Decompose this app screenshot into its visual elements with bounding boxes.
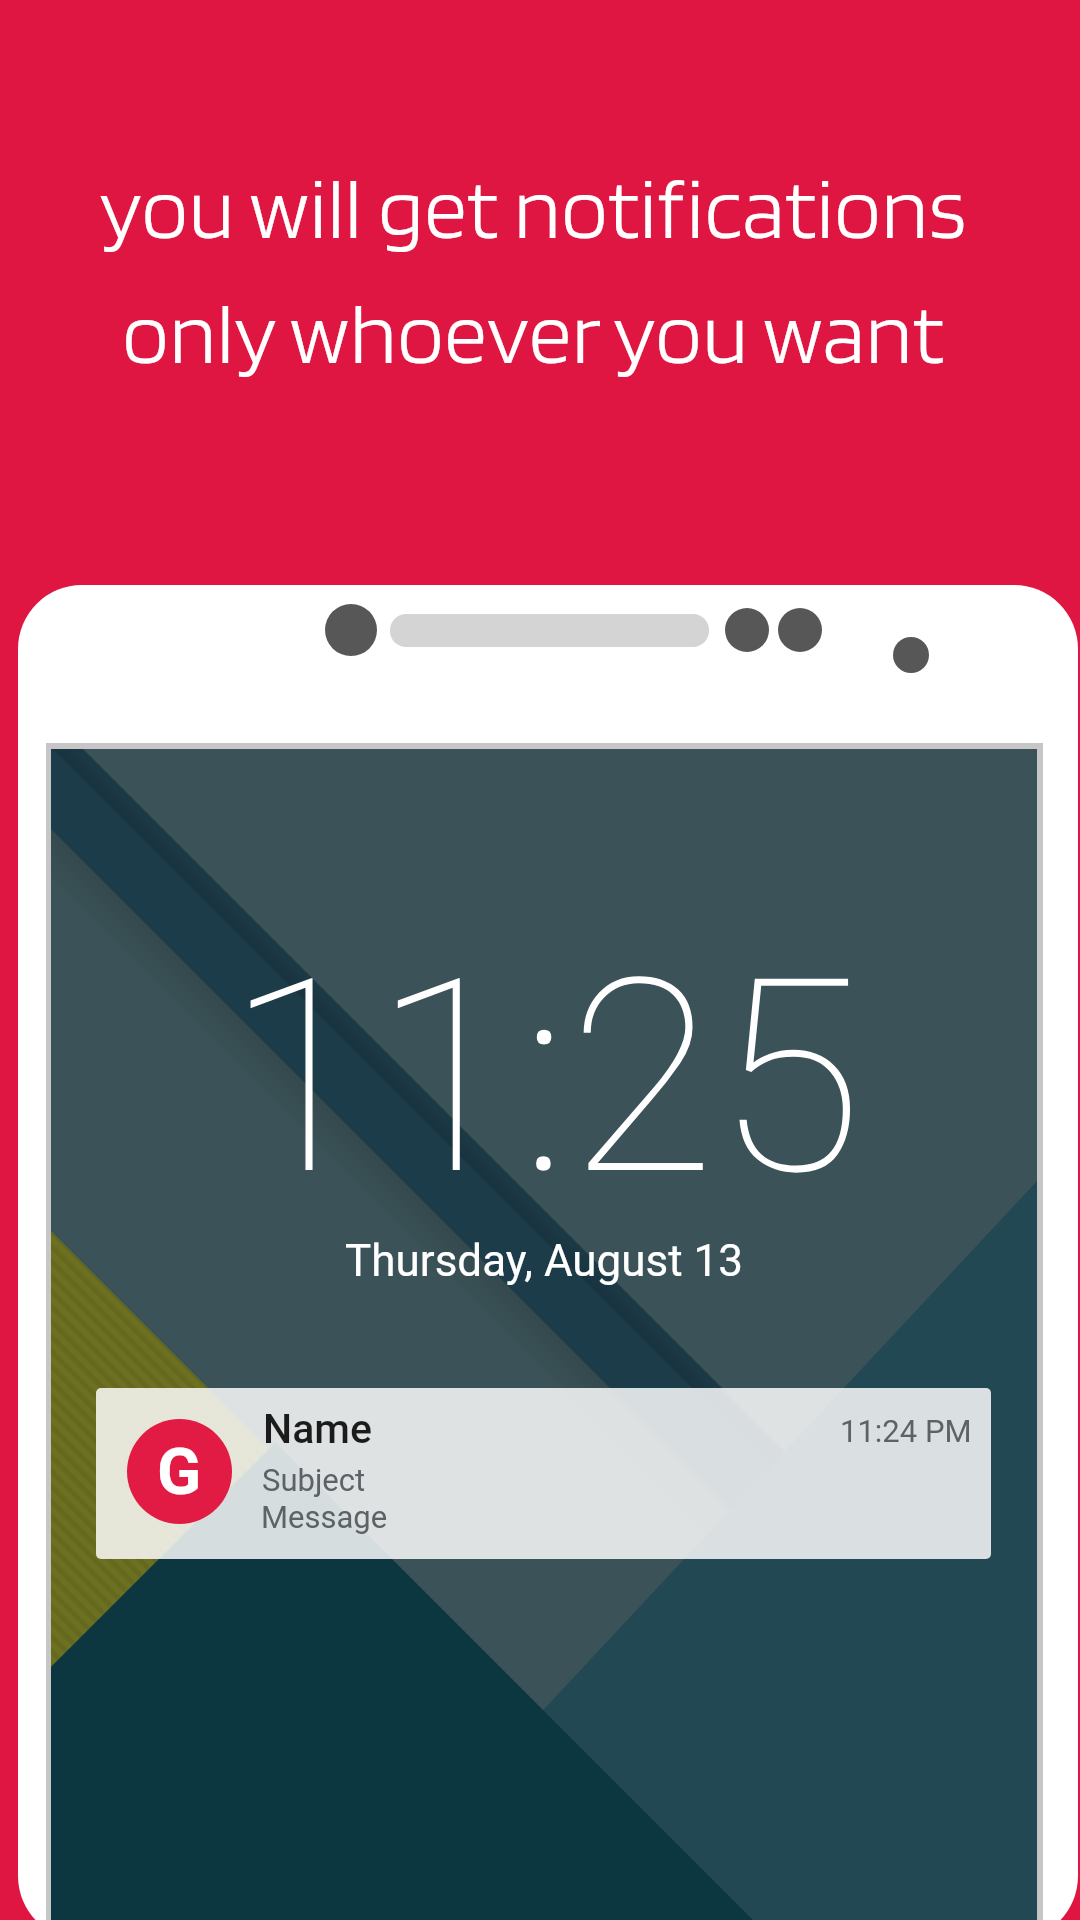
staticText: Thursday, August 13 [345,1235,744,1287]
staticText: G [157,1434,202,1510]
button[interactable]: G [96,1388,991,1559]
staticText: 11:25 [226,920,863,1235]
other: Phone earpiece and camera [0,0,1080,1920]
staticText: Subject [262,1462,366,1498]
staticText: Name [263,1405,373,1453]
staticText: Message [261,1499,388,1535]
staticText: you will get notifications only whoever … [0,155,1073,384]
staticText: 11:24 PM [840,1413,972,1449]
